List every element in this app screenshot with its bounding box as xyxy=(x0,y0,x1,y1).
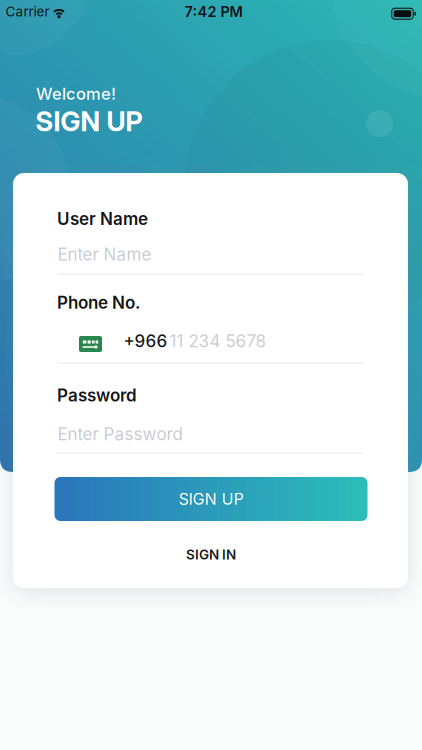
staticText: SIGN UP xyxy=(178,489,243,509)
staticText: Phone No. xyxy=(57,292,140,313)
staticText: Welcome! xyxy=(36,84,116,104)
button[interactable]: SIGN IN xyxy=(186,546,236,563)
staticText: SIGN IN xyxy=(186,546,236,563)
staticText: Password xyxy=(57,385,137,406)
staticText: Enter Name xyxy=(57,244,151,265)
staticText: SIGN UP xyxy=(35,105,142,138)
staticText: User Name xyxy=(57,208,148,229)
staticText: 7:42 PM xyxy=(184,3,242,20)
staticText: Carrier xyxy=(5,3,49,20)
staticText: 11 234 5678 xyxy=(169,331,266,351)
button[interactable]: SIGN UP xyxy=(54,477,367,521)
staticText: Enter Password xyxy=(57,424,182,444)
staticText: +966 xyxy=(123,331,167,351)
